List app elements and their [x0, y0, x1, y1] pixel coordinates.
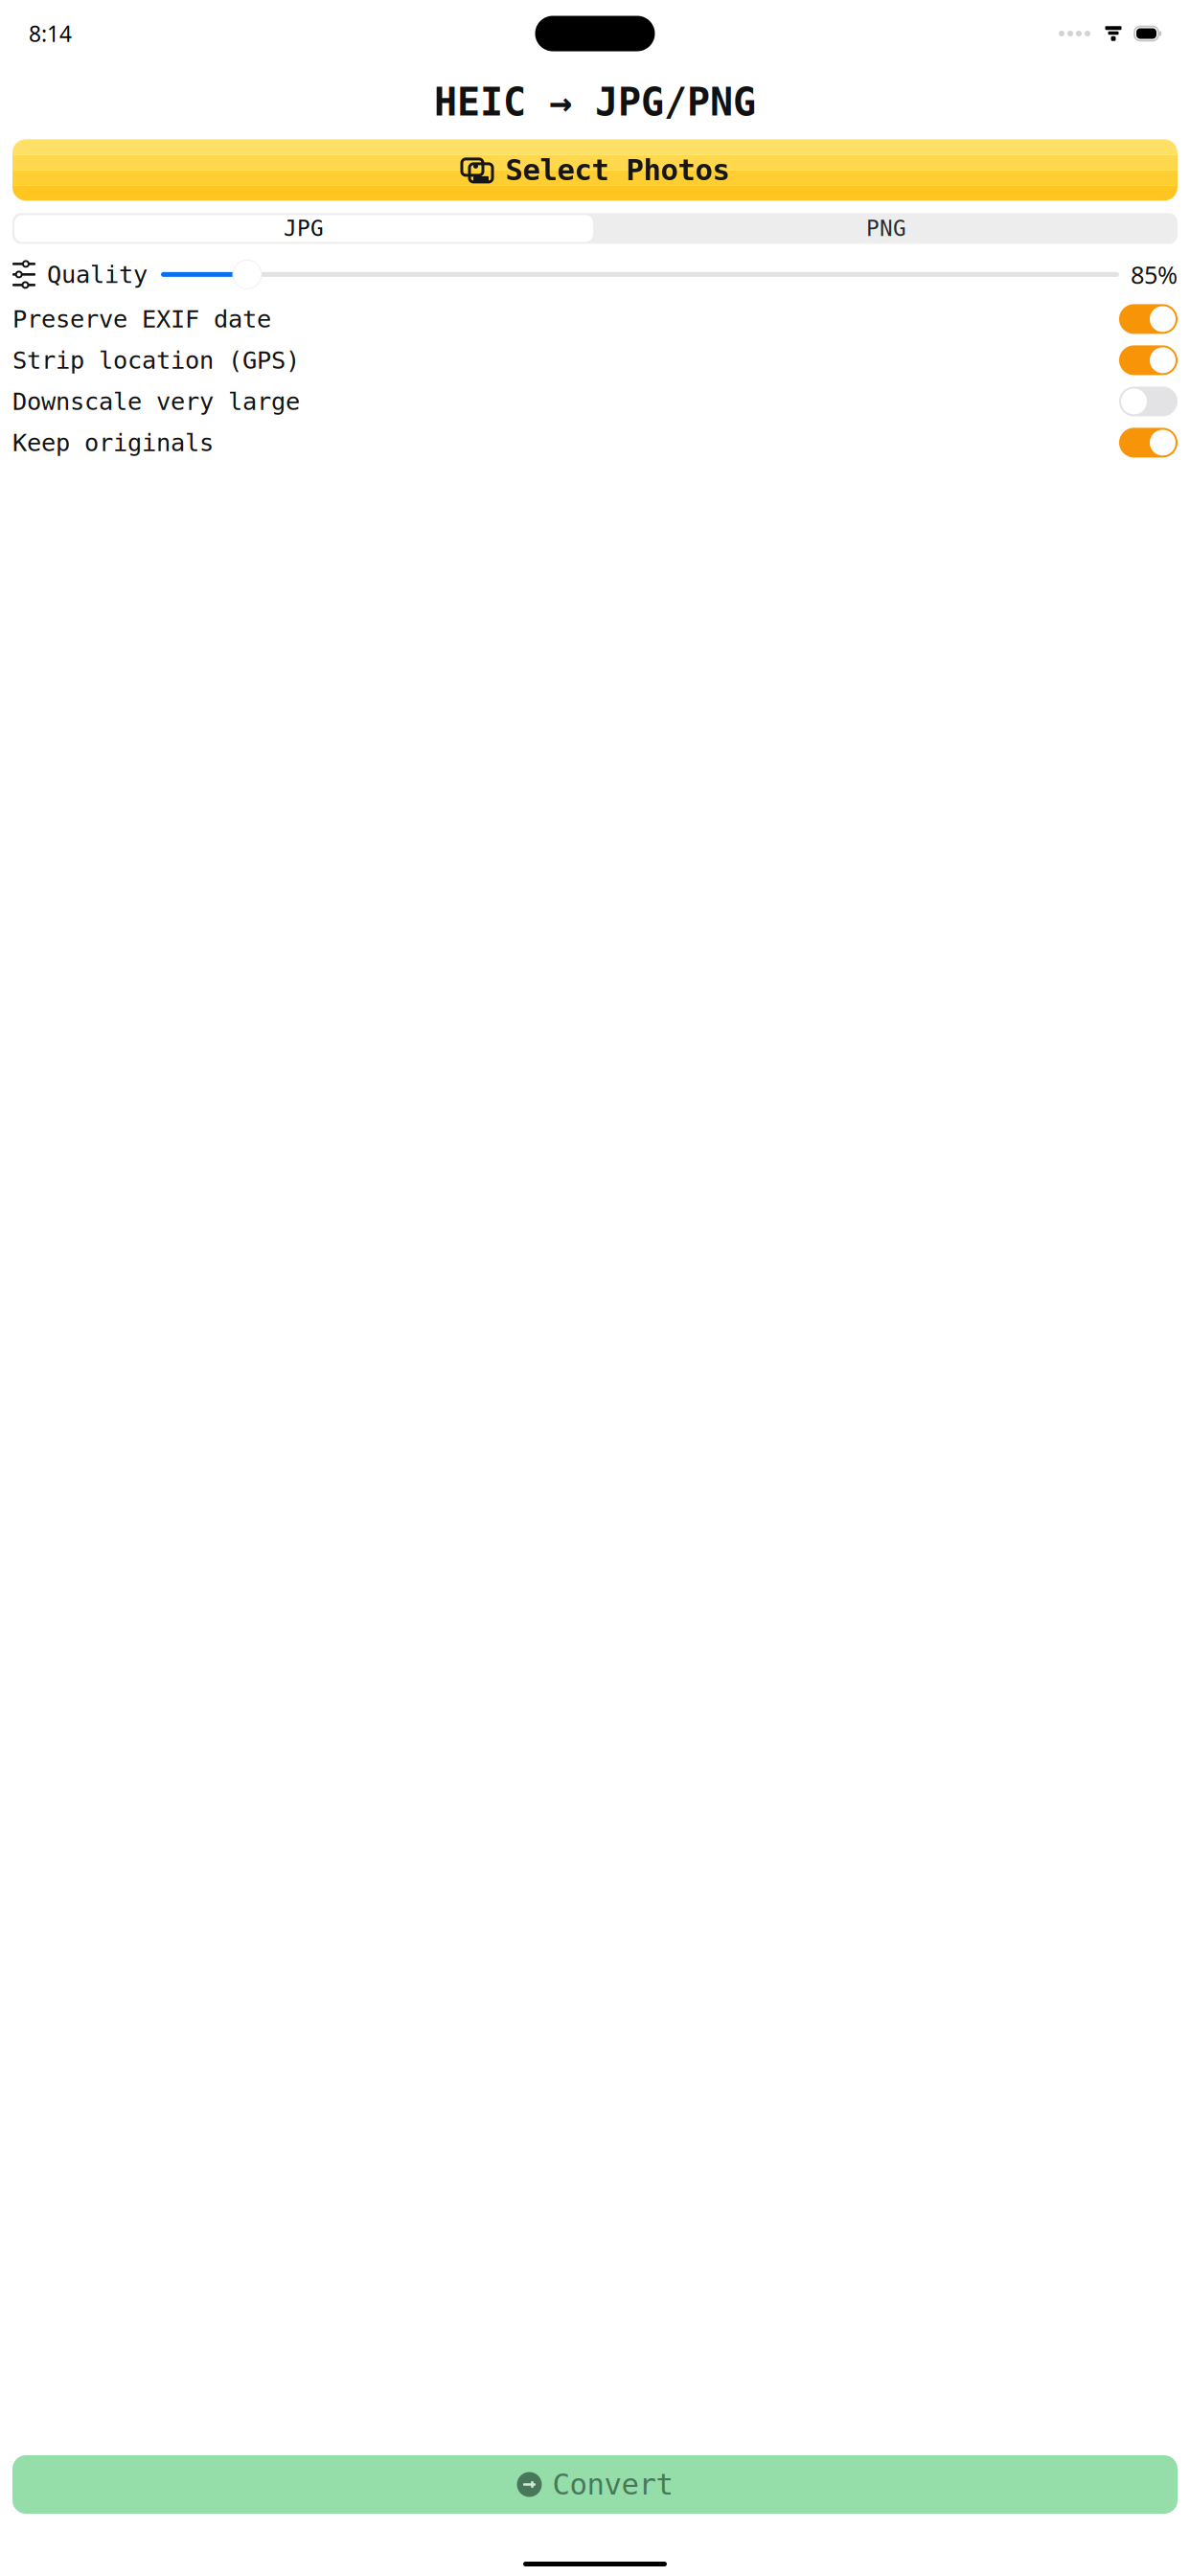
staticText: Quality: [47, 261, 148, 288]
staticText: PNG: [866, 216, 906, 241]
button[interactable]: Strip location (GPS): [12, 340, 1178, 381]
staticText: Preserve EXIF date: [12, 305, 271, 333]
staticText: Keep originals: [12, 429, 214, 456]
staticText: 8:14: [29, 19, 72, 48]
button[interactable]: Select Photos: [12, 139, 1178, 201]
button[interactable]: JPG: [12, 213, 595, 244]
staticText: Select Photos: [505, 153, 730, 187]
button[interactable]: Downscale very large: [12, 381, 1178, 422]
button[interactable]: Keep originals: [12, 422, 1178, 463]
button[interactable]: Preserve EXIF date: [12, 298, 1178, 340]
staticText: Downscale very large: [12, 388, 300, 415]
staticText: Convert: [552, 2468, 673, 2501]
button[interactable]: Convert: [12, 2455, 1178, 2514]
button[interactable]: PNG: [595, 213, 1178, 244]
staticText: 85%: [1131, 258, 1178, 291]
staticText: HEIC → JPG/PNG: [434, 80, 756, 124]
staticText: JPG: [284, 216, 324, 241]
staticText: Strip location (GPS): [12, 346, 300, 374]
